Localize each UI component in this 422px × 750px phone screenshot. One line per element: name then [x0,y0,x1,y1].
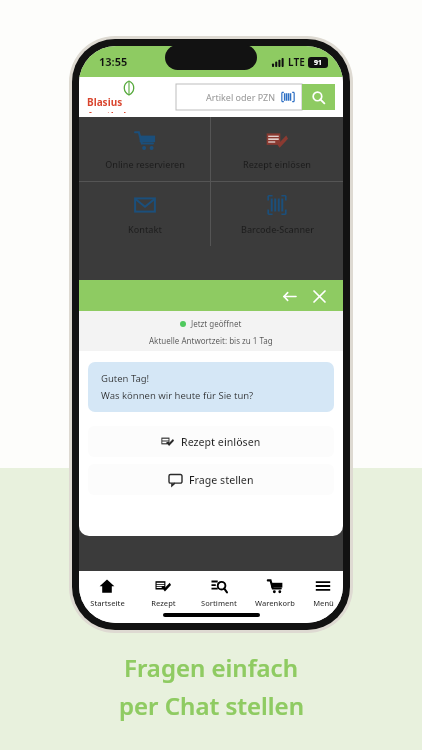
staticText: Startseite [90,598,125,608]
staticText: LTE [288,55,305,69]
staticText: Rezept [151,598,176,608]
staticText: Rezept einlösen [243,158,311,170]
staticText: Jetzt geöffnet [191,318,242,329]
button[interactable]: Kontakt [79,182,210,246]
button[interactable]: Menü [303,578,343,608]
staticText: Frage stellen [189,473,254,487]
staticText: Online reservieren [105,158,185,170]
staticText: Blasius Apotheke [87,95,171,113]
staticText: Kontakt [128,223,162,235]
button[interactable]: Frage stellen [88,464,334,495]
staticText: per Chat stellen [119,689,304,722]
staticText: iPhone and its design are trademarks of … [92,299,100,444]
button[interactable]: Startseite [79,578,135,608]
staticText: Warenkorb [255,598,295,608]
button[interactable]: Online reservieren [79,117,210,181]
staticText: Sortiment [201,598,237,608]
staticText: Artikel oder PZN [206,91,276,103]
button[interactable]: Warenkorb [247,578,303,608]
button[interactable]: Artikel oder PZN [176,84,335,110]
button[interactable]: Rezept [135,578,191,608]
button[interactable]: Rezept einlösen [88,426,334,457]
staticText: Rezept einlösen [181,435,261,449]
button[interactable]: Zurück [278,285,300,307]
staticText: Aktuelle Antwortzeit: bis zu 1 Tag [149,335,273,346]
button[interactable]: Blasius Apotheke [87,81,171,113]
button[interactable]: Suchen [302,84,335,110]
button[interactable]: Barcode-Scanner [211,182,343,246]
staticText: Guten Tag! [101,372,150,385]
staticText: 91 [314,58,323,68]
staticText: Fragen einfach [124,651,298,684]
staticText: 13:55 [99,54,128,69]
button[interactable]: Rezept einlösen [211,117,343,181]
button[interactable]: Sortiment [191,578,247,608]
staticText: Was können wir heute für Sie tun? [101,389,254,402]
staticText: Menü [313,598,334,608]
staticText: Barcode-Scanner [241,223,314,235]
button[interactable]: Schließen [308,285,330,307]
